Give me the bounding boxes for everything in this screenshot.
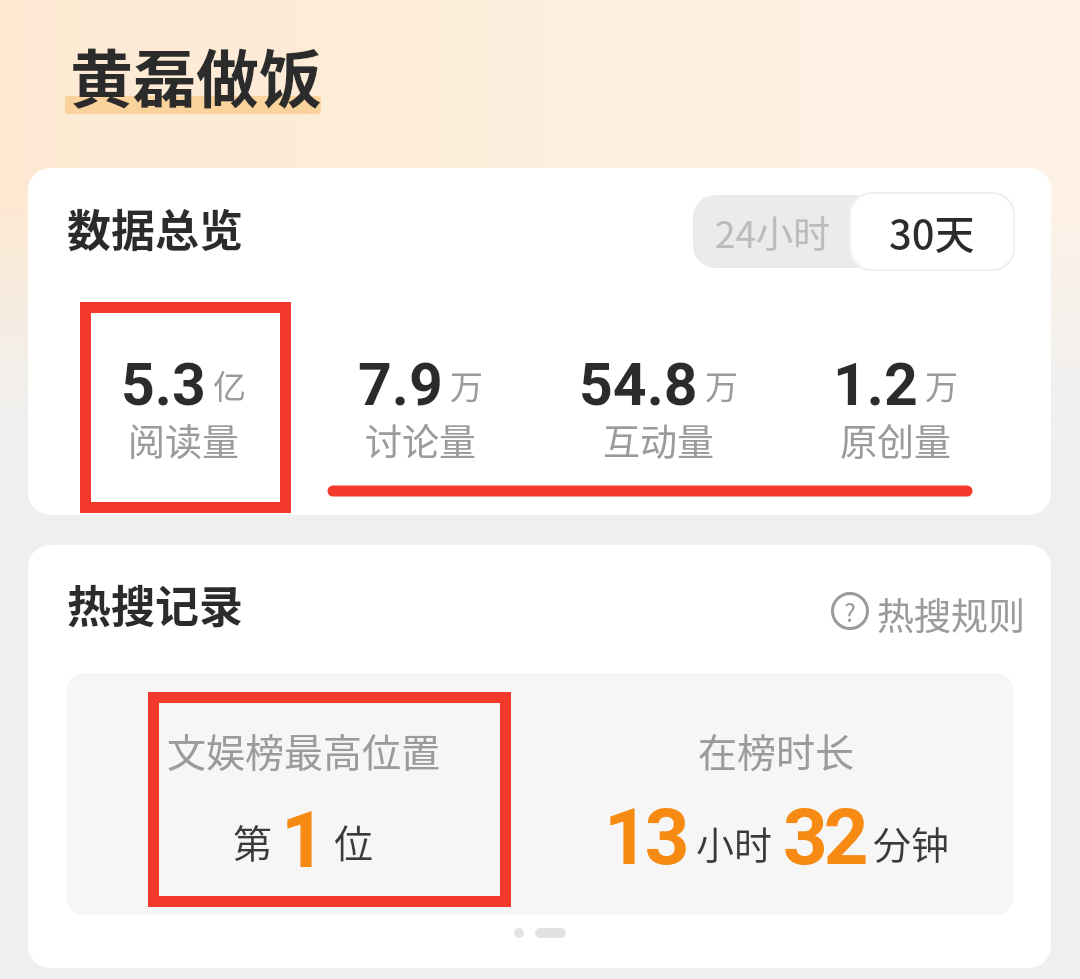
staticText: 32 [783, 792, 865, 883]
staticText: ? [844, 593, 856, 629]
button[interactable]: 30天 [851, 194, 1013, 269]
button[interactable]: 7.9 [290, 346, 550, 466]
button[interactable]: 文娱榜最高位置 [67, 673, 540, 915]
staticText: 第 [233, 813, 273, 869]
staticText: 万 [925, 361, 958, 409]
staticText: 54.8 [579, 350, 698, 419]
staticText: 5.3 [121, 350, 206, 419]
button[interactable]: 24小时 [693, 195, 853, 268]
staticText: 阅读量 [128, 413, 239, 467]
staticText: 7.9 [358, 350, 443, 419]
staticText: 文娱榜最高位置 [167, 722, 441, 778]
button[interactable]: 54.8 [528, 346, 788, 466]
button[interactable]: 热搜规则 [823, 583, 1051, 639]
staticText: 分钟 [873, 815, 950, 870]
staticText: 亿 [213, 361, 246, 409]
staticText: 数据总览 [67, 196, 243, 260]
staticText: 30天 [889, 203, 975, 261]
staticText: 互动量 [603, 413, 714, 467]
staticText: 热搜规则 [877, 587, 1025, 641]
staticText: 万 [705, 361, 738, 409]
button[interactable]: 1.2 [765, 346, 1025, 466]
button[interactable]: 黄磊做饭 [70, 29, 322, 120]
staticText: 24小时 [715, 205, 831, 259]
staticText: 1.2 [833, 350, 918, 419]
button[interactable]: 在榜时长 [540, 673, 1013, 915]
staticText: 1 [281, 795, 322, 886]
staticText: 热搜记录 [67, 572, 243, 636]
button[interactable]: 5.3 [53, 346, 313, 466]
staticText: 在榜时长 [698, 722, 855, 778]
staticText: 万 [450, 361, 483, 409]
staticText: 讨论量 [365, 413, 476, 467]
staticText: 原创量 [840, 413, 951, 467]
staticText: 位 [334, 813, 374, 869]
staticText: 小时 [696, 815, 773, 870]
staticText: 黄磊做饭 [70, 29, 322, 120]
staticText: 13 [604, 792, 686, 883]
